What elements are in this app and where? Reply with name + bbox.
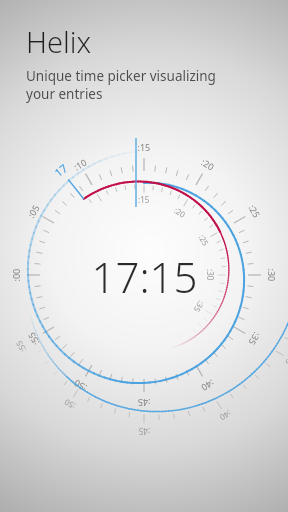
staticText: 17:15 <box>91 248 198 305</box>
staticText: Helix <box>26 22 92 61</box>
staticText: Unique time picker visualizing your entr… <box>26 67 216 103</box>
